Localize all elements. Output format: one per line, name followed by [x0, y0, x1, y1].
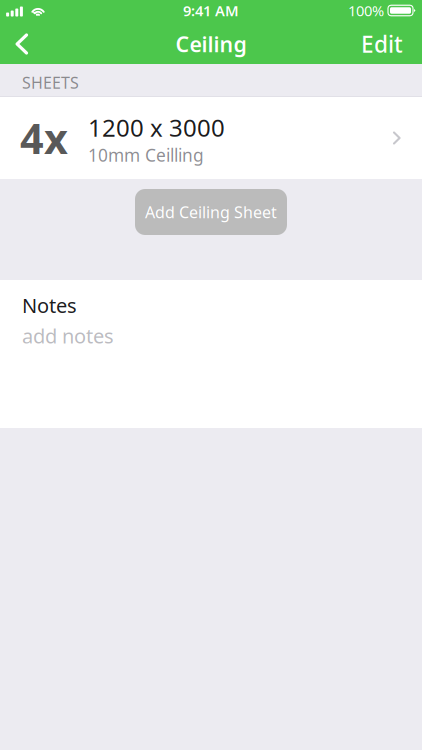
- button[interactable]: 4x: [0, 97, 422, 179]
- staticText: add notes: [22, 323, 114, 349]
- button[interactable]: Add Ceiling Sheet: [135, 189, 287, 235]
- staticText: Ceiling: [175, 30, 246, 58]
- staticText: Add Ceiling Sheet: [145, 201, 277, 223]
- staticText: 1200 x 3000: [88, 112, 225, 143]
- staticText: Notes: [22, 292, 77, 319]
- button[interactable]: Notes: [0, 280, 422, 428]
- button[interactable]: Edit: [351, 24, 413, 64]
- staticText: SHEETS: [22, 72, 79, 93]
- staticText: 10mm Ceilling: [88, 143, 204, 166]
- staticText: 100%: [348, 1, 384, 20]
- staticText: Edit: [361, 29, 403, 59]
- button[interactable]: Back: [0, 24, 44, 64]
- staticText: 9:41 AM: [183, 1, 239, 20]
- staticText: 4x: [20, 111, 68, 165]
